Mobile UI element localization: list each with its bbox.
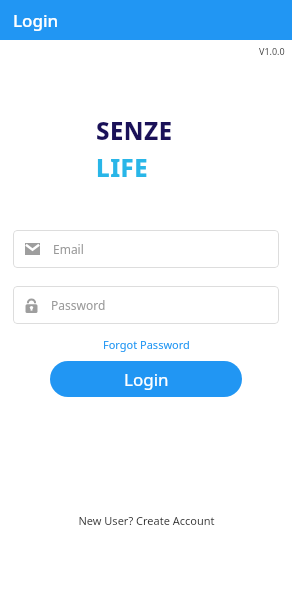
button[interactable]: New User? Create Account (72, 510, 221, 531)
button[interactable]: Password (13, 286, 279, 324)
staticText: LIFE (96, 151, 148, 184)
staticText: V1.0.0 (259, 45, 285, 57)
staticText: Password (51, 297, 106, 313)
button[interactable]: Email (13, 230, 279, 268)
staticText: SENZE (96, 114, 173, 147)
staticText: Login (13, 9, 59, 32)
staticText: Login (124, 368, 169, 391)
staticText: Email (53, 241, 84, 257)
button[interactable]: Login (50, 361, 242, 397)
button[interactable]: Forgot Password (99, 335, 194, 354)
